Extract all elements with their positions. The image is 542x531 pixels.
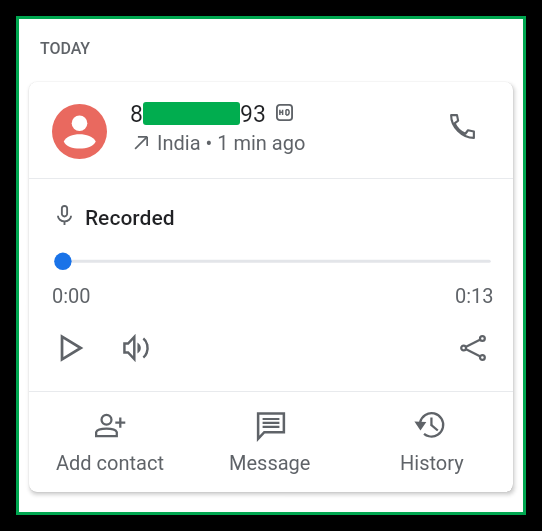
staticText: 0:00 bbox=[52, 284, 91, 307]
button[interactable]: Message bbox=[190, 392, 351, 492]
button[interactable]: Volume bbox=[116, 328, 156, 368]
button[interactable]: Share bbox=[453, 328, 493, 368]
button[interactable]: Add contact bbox=[29, 392, 190, 492]
staticText: TODAY bbox=[40, 39, 91, 58]
staticText: Message bbox=[229, 451, 311, 474]
staticText: 0:13 bbox=[455, 284, 494, 307]
staticText: Recorded bbox=[85, 206, 175, 231]
staticText: History bbox=[400, 451, 464, 474]
button[interactable] bbox=[29, 82, 513, 178]
button[interactable]: History bbox=[352, 392, 513, 492]
staticText: Add contact bbox=[56, 451, 164, 474]
button[interactable]: Call bbox=[430, 94, 494, 158]
staticText: India • 1 min ago bbox=[157, 131, 306, 154]
staticText: 8 bbox=[130, 101, 143, 128]
staticText: 93 bbox=[240, 101, 266, 128]
button[interactable]: Play bbox=[51, 328, 91, 368]
